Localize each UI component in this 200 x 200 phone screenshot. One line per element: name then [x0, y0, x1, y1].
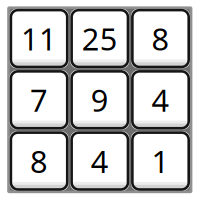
staticText: 8 — [30, 141, 48, 181]
button[interactable]: 11 — [10, 9, 68, 68]
button[interactable]: 4 — [70, 131, 129, 191]
staticText: 4 — [151, 79, 169, 120]
staticText: 1 — [151, 141, 169, 181]
button[interactable]: 25 — [70, 9, 129, 68]
staticText: 7 — [30, 79, 48, 120]
button[interactable]: 1 — [131, 131, 190, 191]
button[interactable]: 7 — [10, 70, 68, 130]
staticText: 11 — [21, 18, 57, 59]
button[interactable]: 9 — [70, 70, 129, 130]
button[interactable]: 8 — [131, 9, 190, 68]
staticText: 8 — [151, 18, 169, 59]
staticText: 9 — [91, 79, 109, 120]
staticText: 4 — [91, 141, 109, 181]
button[interactable]: 4 — [131, 70, 190, 130]
button[interactable]: 8 — [10, 131, 68, 191]
staticText: 25 — [82, 18, 118, 59]
